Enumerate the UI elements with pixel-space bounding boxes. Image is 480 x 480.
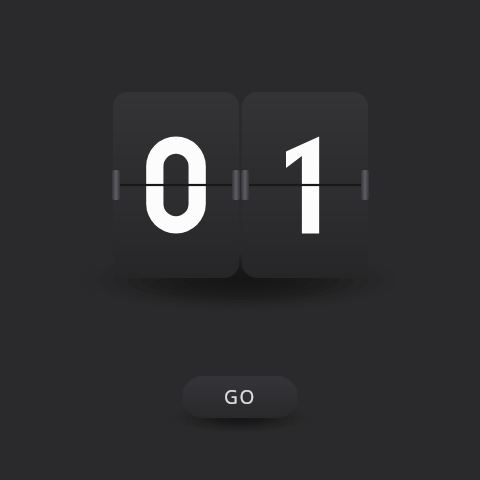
staticText: GO [224,384,256,410]
button[interactable]: GO [182,376,298,418]
